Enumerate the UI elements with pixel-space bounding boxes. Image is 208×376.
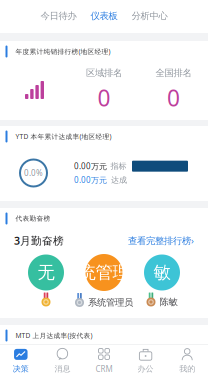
button[interactable]: 仪表板 — [83, 10, 124, 22]
staticText: 3月勤奋榜 — [14, 233, 64, 248]
button[interactable]: 敏 — [133, 254, 191, 306]
button[interactable]: 查看完整排行榜› — [128, 234, 194, 247]
staticText: 0 — [167, 83, 180, 113]
button[interactable]: 我的 — [166, 345, 208, 376]
button[interactable]: 决策 — [0, 345, 42, 376]
button[interactable]: 分析中心 — [124, 10, 174, 22]
staticText: 系统管理员 — [88, 297, 133, 308]
button[interactable]: CRM — [83, 345, 125, 376]
staticText: YTD 本年累计达成率(地区经理) — [15, 132, 111, 141]
staticText: CRM — [95, 363, 112, 374]
staticText: 0.0% — [24, 168, 43, 178]
staticText: 仪表板 — [90, 10, 117, 22]
staticText: 我的 — [179, 364, 195, 374]
staticText: 消息 — [54, 364, 70, 374]
staticText: 敏 — [153, 262, 170, 283]
staticText: 年度累计纯销排行榜(地区经理) — [15, 47, 110, 56]
staticText: 代表勤奋榜 — [15, 214, 50, 223]
staticText: 0 — [97, 83, 110, 113]
button[interactable]: 今日待办 — [33, 10, 83, 22]
staticText: 全国排名 — [155, 67, 191, 79]
staticText: MTD 上月达成率(按代表) — [15, 331, 92, 340]
button[interactable]: 办公 — [125, 345, 166, 376]
staticText: 0.00万元 — [74, 161, 107, 171]
staticText: 今日待办 — [40, 10, 76, 22]
staticText: 0.00万元 — [74, 175, 107, 185]
staticText: 无 — [37, 262, 54, 283]
staticText: 决策 — [13, 364, 29, 374]
button[interactable]: 无 — [17, 254, 75, 306]
staticText: 指标 — [110, 161, 126, 171]
button[interactable]: 统管理 — [75, 254, 133, 307]
staticText: 陈敏 — [159, 296, 177, 308]
staticText: 达成 — [111, 175, 127, 185]
staticText: 统管理 — [78, 262, 129, 283]
staticText: 分析中心 — [131, 10, 167, 22]
button[interactable]: 消息 — [42, 345, 83, 376]
staticText: 查看完整排行榜› — [128, 234, 194, 247]
staticText: 办公 — [138, 364, 154, 374]
staticText: 区域排名 — [86, 67, 122, 79]
